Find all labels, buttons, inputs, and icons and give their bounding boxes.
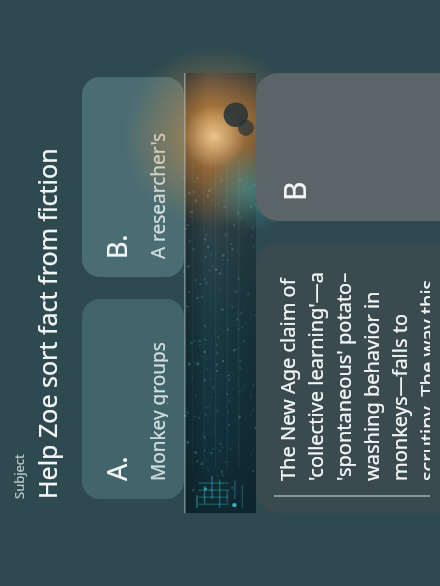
staticText: Monkey groups contacted by telepathy aft…	[145, 317, 168, 481]
staticText: B	[274, 181, 315, 201]
button[interactable]: B.	[82, 77, 184, 277]
staticText: Help Zoe sort fact from fiction	[30, 148, 64, 499]
staticText: A.	[98, 456, 135, 481]
button[interactable]: A.	[82, 299, 184, 499]
staticText: The New Age claim of 'collective learnin…	[274, 261, 430, 481]
button[interactable]: B	[256, 73, 440, 221]
staticText: B.	[98, 234, 135, 259]
staticText: Subject	[10, 454, 28, 499]
button[interactable]: The New Age claim of 'collective learnin…	[256, 243, 440, 513]
staticText: A researcher's anecdote was inflated int…	[145, 95, 168, 259]
other: Illustration	[184, 73, 256, 513]
